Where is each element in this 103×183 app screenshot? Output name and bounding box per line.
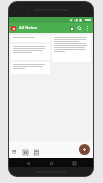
- button[interactable]: Home: [47, 159, 55, 167]
- button[interactable]: [52, 35, 91, 62]
- button[interactable]: Grid view: [22, 149, 28, 155]
- button[interactable]: New note: [79, 144, 90, 155]
- button[interactable]: [11, 62, 50, 74]
- button[interactable]: List view: [11, 149, 17, 155]
- button[interactable]: Grid view: [68, 25, 75, 32]
- button[interactable]: [11, 35, 50, 42]
- button[interactable]: Archive: [33, 149, 39, 155]
- button[interactable]: App icon: [11, 26, 16, 31]
- staticText: All Notes: [19, 25, 37, 31]
- button[interactable]: Back: [24, 159, 32, 167]
- button[interactable]: Recent apps: [70, 159, 78, 167]
- button[interactable]: Search: [76, 25, 83, 32]
- button[interactable]: More options: [84, 25, 91, 32]
- button[interactable]: [11, 44, 50, 60]
